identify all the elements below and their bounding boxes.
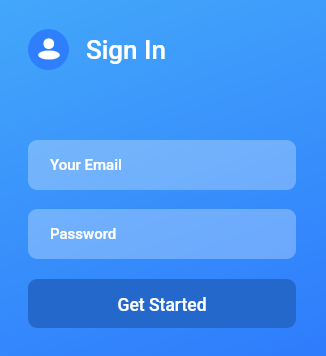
button[interactable]: Get Started	[28, 279, 296, 328]
staticText: Password	[50, 225, 117, 243]
staticText: Your Email	[50, 156, 122, 174]
button[interactable]: Account	[28, 29, 69, 70]
button[interactable]: Your Email	[28, 140, 296, 190]
staticText: Get Started	[117, 295, 207, 316]
button[interactable]: Password	[28, 209, 296, 259]
staticText: Sign In	[86, 35, 166, 65]
